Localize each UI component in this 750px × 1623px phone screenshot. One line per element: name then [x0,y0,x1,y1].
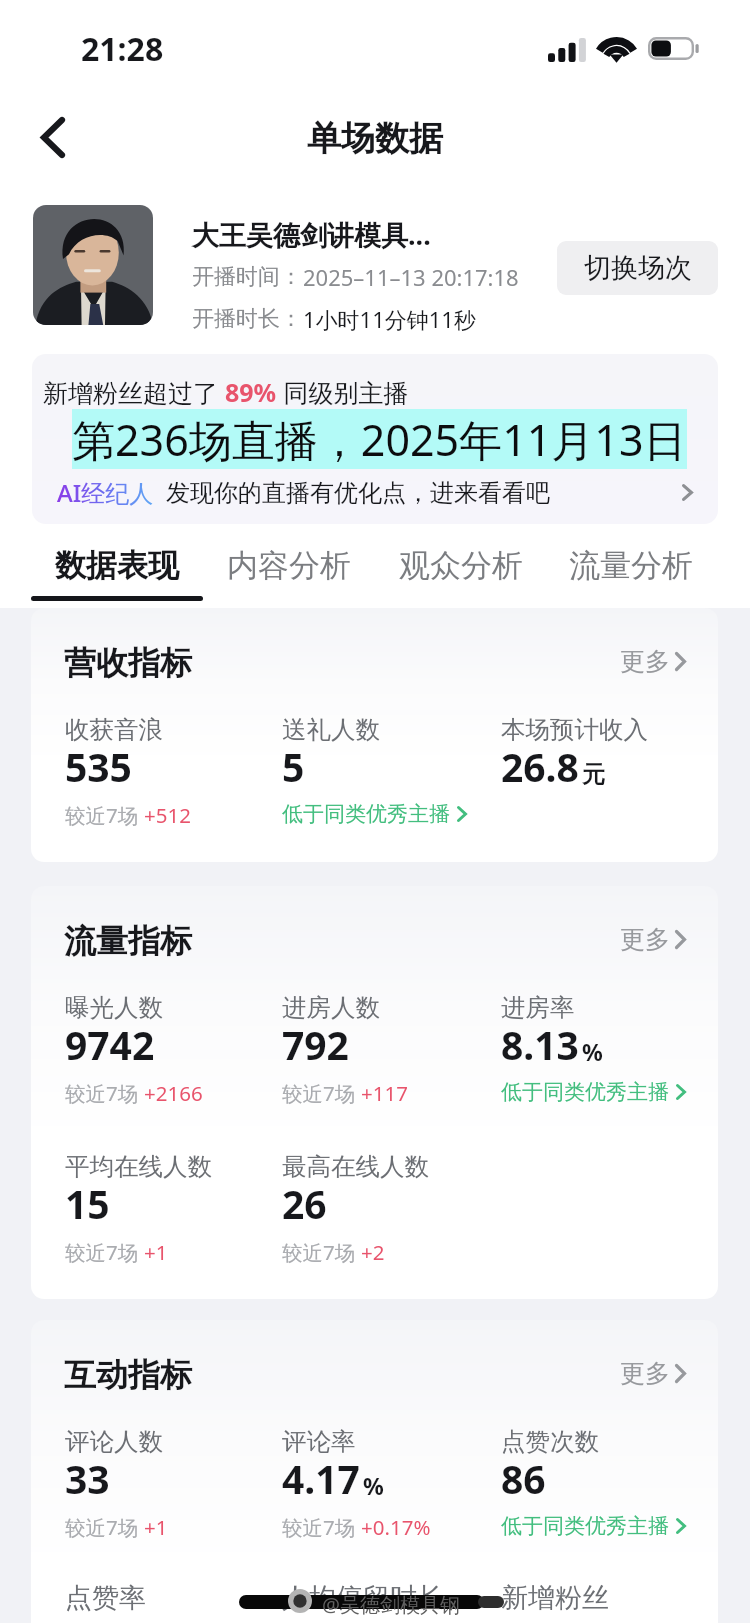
staticText: 进房人数 [282,992,380,1023]
staticText: 单场数据 [307,117,443,160]
staticText: 8.13 [501,1018,579,1071]
staticText: 89% [225,375,277,409]
staticText: % [582,1036,603,1067]
staticText: +1 [144,1238,168,1266]
staticText: 切换场次 [584,251,692,285]
staticText: 元 [582,760,605,789]
staticText: 更多 [620,924,670,955]
staticText: 新增粉丝超过了 [43,375,225,409]
staticText: 1小时11分钟11秒 [303,304,476,334]
staticText: % [363,1470,384,1501]
staticText: 较近7场 [282,1513,356,1541]
staticText: 较近7场 [65,1079,139,1107]
staticText: +512 [144,801,191,829]
staticText: 收获音浪 [65,714,163,745]
staticText: 更多 [620,646,670,677]
staticText: 4.17 [282,1452,360,1505]
button[interactable]: 数据表现 [31,524,203,596]
staticText: 较近7场 [65,1513,139,1541]
staticText: 互动指标 [64,1355,192,1395]
staticText: 同级别主播 [277,375,409,409]
staticText: 535 [65,740,132,793]
staticText: 本场预计收入 [501,714,648,745]
staticText: 评论率 [282,1426,356,1457]
button[interactable]: 低于同类优秀主播 [501,1513,686,1539]
staticText: 进房率 [501,992,575,1023]
button[interactable]: 流量分析 [545,524,717,596]
staticText: 较近7场 [282,1079,356,1107]
staticText: +2 [361,1238,385,1266]
staticText: 人均停留时长 [282,1581,444,1615]
staticText: 点赞率 [65,1581,146,1615]
staticText: 观众分析 [399,546,523,585]
staticText: 曝光人数 [65,992,163,1023]
staticText: 送礼人数 [282,714,380,745]
staticText: 5 [282,740,305,793]
button[interactable]: 观众分析 [375,524,547,596]
staticText: 第236场直播，2025年11月13日 [72,410,687,469]
staticText: 营收指标 [64,643,192,683]
button[interactable]: 内容分析 [203,524,375,596]
staticText: 新增粉丝 [501,1581,609,1615]
staticText: 较近7场 [65,1238,139,1266]
staticText: 21:28 [81,27,164,71]
staticText: 低于同类优秀主播 [501,1513,669,1539]
staticText: 开播时间： [192,263,302,291]
staticText: +2166 [144,1079,203,1107]
staticText: 较近7场 [282,1238,356,1266]
staticText: 最高在线人数 [282,1151,429,1182]
button[interactable]: 更多 [620,924,686,955]
staticText: 9742 [65,1018,155,1071]
staticText: 2025–11–13 20:17:18 [303,262,519,292]
button[interactable]: 更多 [620,646,686,677]
staticText: AI经纪人 [57,476,154,509]
staticText: 26 [282,1177,327,1230]
staticText: 点赞次数 [501,1426,599,1457]
staticText: 更多 [620,1358,670,1389]
staticText: 流量指标 [64,921,192,961]
staticText: 低于同类优秀主播 [501,1079,669,1105]
button[interactable]: 新增粉丝超过了 [32,354,718,524]
staticText: 平均在线人数 [65,1151,212,1182]
button[interactable]: 切换场次 [557,241,718,295]
staticText: 评论人数 [65,1426,163,1457]
button[interactable]: 更多 [620,1358,686,1389]
button[interactable]: Back [22,106,84,168]
staticText: 内容分析 [227,546,351,585]
staticText: 较近7场 [65,801,139,829]
staticText: 大王吴德剑讲模具... [192,216,431,253]
staticText: 低于同类优秀主播 [282,801,450,827]
staticText: 86 [501,1452,546,1505]
staticText: 26.8 [501,740,579,793]
staticText: +1 [144,1513,168,1541]
staticText: 数据表现 [55,546,179,585]
staticText: 33 [65,1452,110,1505]
staticText: 开播时长： [192,305,302,333]
staticText: 发现你的直播有优化点，进来看看吧 [166,478,550,508]
staticText: +0.17% [361,1513,431,1541]
staticText: 792 [282,1018,349,1071]
staticText: 流量分析 [569,546,693,585]
staticText: +117 [361,1079,408,1107]
button[interactable]: 低于同类优秀主播 [501,1079,686,1105]
staticText: 15 [65,1177,110,1230]
button[interactable]: 低于同类优秀主播 [282,801,467,827]
staticText: @吴德剑模具钢 [322,1591,460,1618]
